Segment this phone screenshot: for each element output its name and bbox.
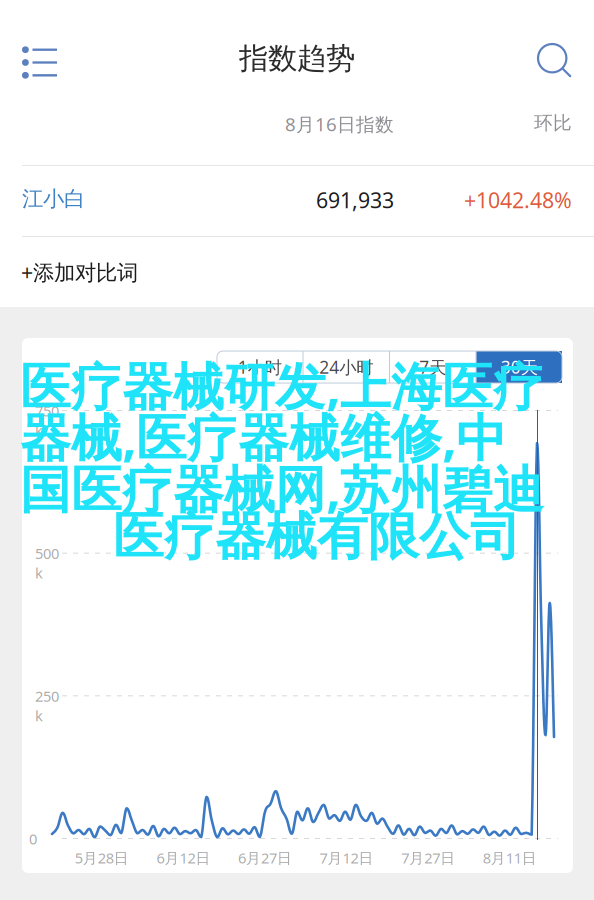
staticText: 30天 <box>501 355 538 378</box>
staticText: 7天 <box>419 355 446 378</box>
staticText: +添加对比词 <box>21 258 138 286</box>
staticText: 医疗器械研发,上海医疗 <box>20 352 544 419</box>
staticText: 7月27日 <box>401 848 455 867</box>
staticText: 国医疗器械网,苏州碧迪 <box>20 455 544 522</box>
staticText: 750k <box>35 401 59 440</box>
staticText: 7月12日 <box>320 848 374 867</box>
button[interactable]: 30天 <box>476 351 562 383</box>
staticText: 691,933 <box>316 186 394 214</box>
staticText: 8月16日指数 <box>285 112 394 136</box>
staticText: 器械,医疗器械维修,中 <box>20 403 507 471</box>
staticText: 指数趋势 <box>239 40 355 76</box>
button[interactable]: +添加对比词 <box>0 237 572 307</box>
button[interactable]: 24小时 <box>303 351 389 383</box>
button[interactable]: 搜索 <box>537 31 594 86</box>
staticText: 江小白 <box>22 186 85 212</box>
staticText: 24小时 <box>319 355 373 378</box>
button[interactable]: 1小时 <box>217 351 302 383</box>
staticText: 1小时 <box>238 355 282 378</box>
staticText: 6月27日 <box>238 848 292 867</box>
staticText: 0 <box>29 829 37 848</box>
staticText: 6月12日 <box>156 848 210 867</box>
staticText: 医疗器械有限公司 <box>113 506 521 568</box>
staticText: 500k <box>35 544 59 583</box>
button[interactable]: 菜单 <box>0 31 57 85</box>
button[interactable]: 7天 <box>390 351 475 383</box>
staticText: 5月28日 <box>75 848 129 867</box>
staticText: 250k <box>35 686 59 725</box>
staticText: 环比 <box>534 112 572 134</box>
staticText: +1042.48% <box>464 186 572 214</box>
staticText: 8月11日 <box>483 848 537 867</box>
